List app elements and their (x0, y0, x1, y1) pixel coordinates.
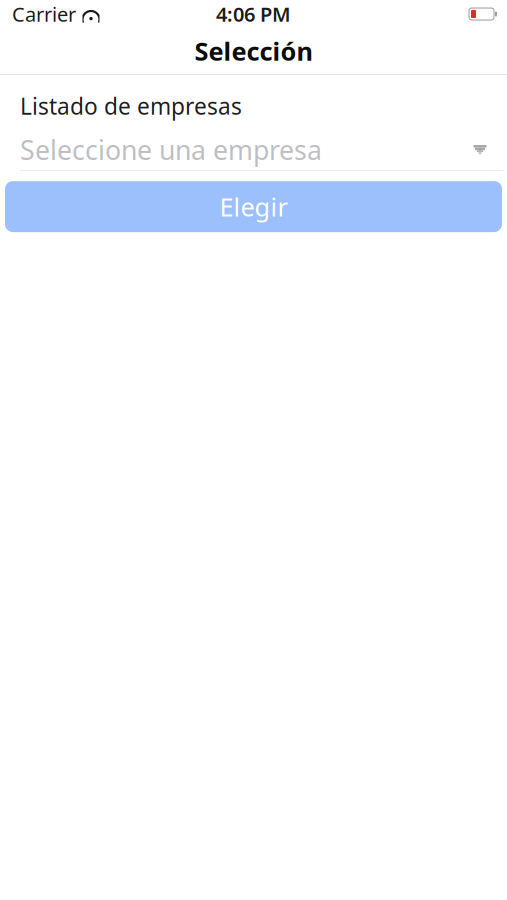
button[interactable]: Elegir (5, 181, 502, 232)
button[interactable]: Seleccione una empresa (0, 129, 507, 171)
staticText: 4:06 PM (216, 1, 291, 27)
staticText: Seleccione una empresa (20, 132, 322, 167)
staticText: Elegir (219, 190, 287, 223)
staticText: Carrier (12, 1, 76, 27)
staticText: Selección (194, 34, 312, 68)
staticText: Listado de empresas (20, 91, 242, 121)
